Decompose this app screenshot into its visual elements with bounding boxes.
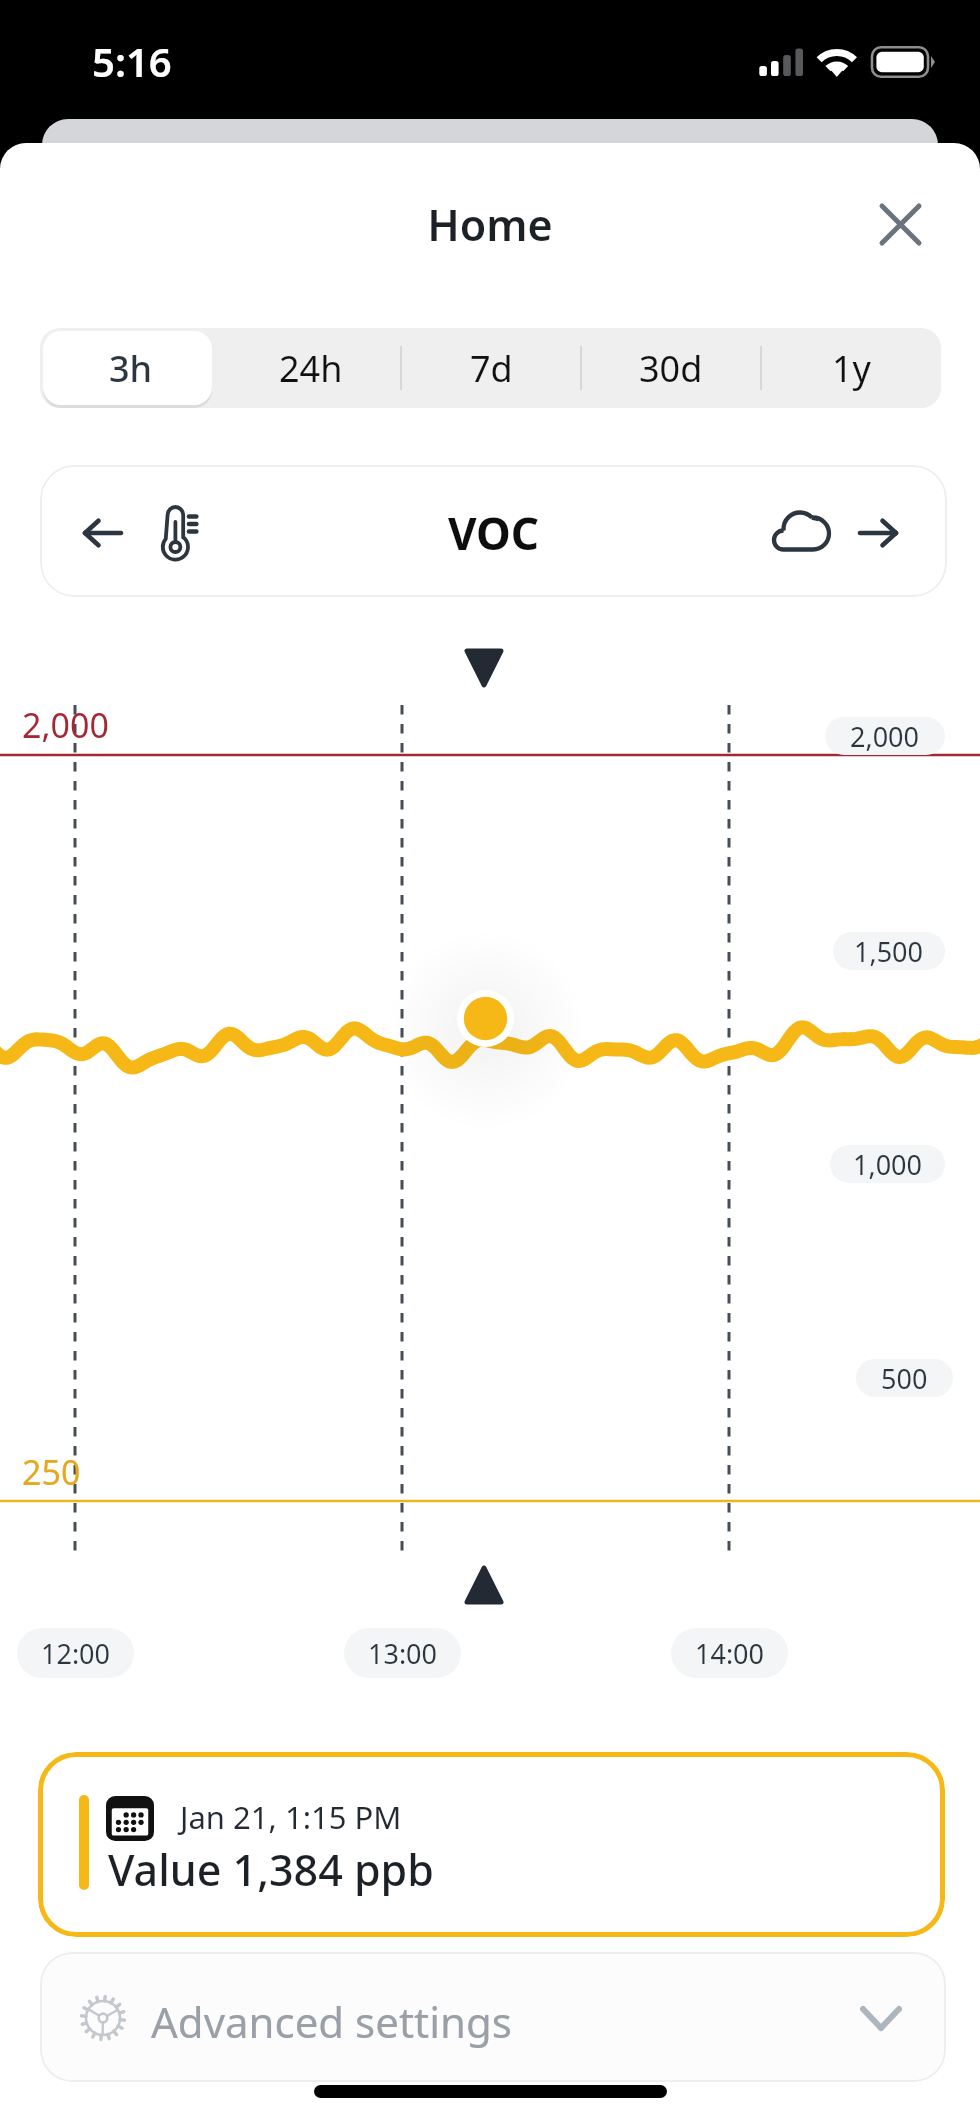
button[interactable]: 3h <box>40 328 221 408</box>
staticText: 5:16 <box>92 34 172 88</box>
staticText: 7d <box>470 344 513 393</box>
staticText: Advanced settings <box>151 1993 512 2050</box>
staticText: Home <box>0 195 980 254</box>
button[interactable]: Close <box>860 184 940 264</box>
staticText: 12:00 <box>41 1635 111 1672</box>
staticText: 250 <box>22 1449 81 1495</box>
staticText: 24h <box>279 344 343 393</box>
button[interactable]: 7d <box>401 328 581 408</box>
button[interactable]: Next metric <box>834 489 922 577</box>
staticText: 2,000 <box>22 702 109 748</box>
staticText: 14:00 <box>695 1635 765 1672</box>
staticText: 1y <box>832 344 871 393</box>
button[interactable]: Previous metric <box>59 489 147 577</box>
button[interactable]: 30d <box>581 328 761 408</box>
staticText: 1,000 <box>853 1146 923 1183</box>
staticText: 500 <box>881 1360 928 1397</box>
button[interactable]: 24h <box>221 328 401 408</box>
staticText: 2,000 <box>850 718 920 755</box>
staticText: 13:00 <box>368 1635 438 1672</box>
staticText: 3h <box>109 344 153 393</box>
staticText: VOC <box>40 503 947 563</box>
button[interactable]: Jan 21, 1:15 PM <box>38 1752 945 1937</box>
staticText: 1,500 <box>854 933 924 970</box>
button[interactable]: Previous metric <box>40 465 947 597</box>
staticText: Value 1,384 ppb <box>108 1840 434 1899</box>
staticText: 30d <box>639 344 703 393</box>
button[interactable]: 1y <box>761 328 941 408</box>
button[interactable]: Advanced settings <box>40 1952 946 2082</box>
staticText: Jan 21, 1:15 PM <box>180 1796 402 1838</box>
